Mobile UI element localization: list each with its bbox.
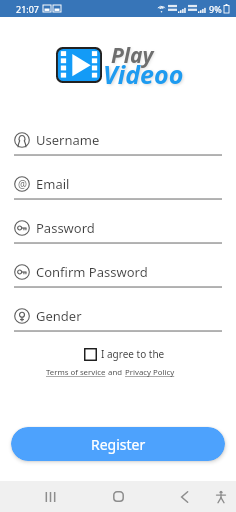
button[interactable]: Password (14, 214, 222, 241)
button[interactable]: I agree to the (84, 347, 165, 361)
staticText: Gender (36, 307, 82, 325)
staticText: Password (36, 219, 95, 237)
button[interactable]: Gender (14, 302, 222, 329)
staticText: Email (36, 175, 70, 193)
button[interactable]: Confirm Password (14, 258, 222, 285)
button[interactable]: Privacy Policy (125, 367, 175, 378)
staticText: Confirm Password (36, 263, 148, 281)
button[interactable]: Register (11, 427, 225, 461)
staticText: and (106, 367, 125, 378)
button[interactable]: Accessibility (206, 481, 236, 512)
button[interactable]: Back (169, 481, 199, 512)
staticText: Videoo (103, 57, 184, 91)
staticText: 21:07 (16, 3, 40, 15)
button[interactable]: Recents (35, 481, 65, 512)
button[interactable]: Terms of service (46, 367, 106, 378)
staticText: 9% (209, 3, 222, 15)
button[interactable]: @ (14, 170, 222, 197)
staticText: I agree to the (101, 347, 165, 361)
button[interactable]: Username (14, 126, 222, 153)
staticText: @ (18, 177, 27, 191)
button[interactable]: Home (103, 481, 133, 512)
staticText: Play (111, 41, 154, 70)
staticText: Username (36, 131, 100, 149)
staticText: Register (91, 435, 146, 454)
